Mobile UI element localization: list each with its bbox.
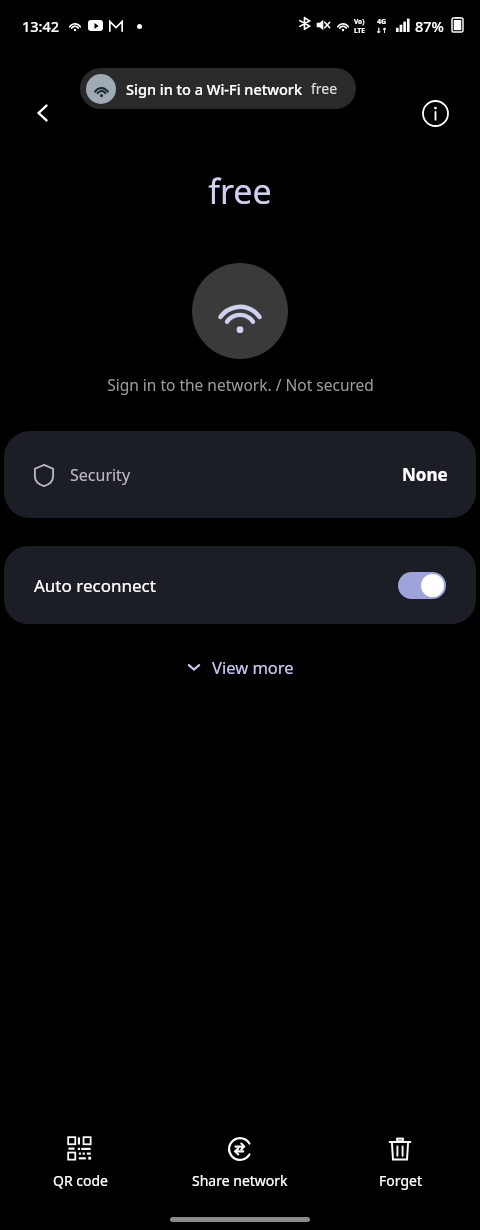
staticText: 87% <box>415 16 444 36</box>
staticText: Sign in to a Wi-Fi network <box>126 79 303 99</box>
staticText: Vo) <box>354 17 365 26</box>
staticText: 13:42 <box>22 16 60 36</box>
staticText: QR code <box>53 1171 108 1190</box>
staticText: ↓↑ <box>376 27 388 35</box>
staticText: None <box>402 463 448 486</box>
staticText: Auto reconnect <box>34 574 156 597</box>
staticText: 4G <box>377 17 387 27</box>
button[interactable]: View more <box>0 648 480 686</box>
button[interactable]: Auto reconnect <box>4 546 476 624</box>
staticText: Security <box>70 464 131 486</box>
staticText: free <box>208 168 272 214</box>
staticText: Sign in to the network. / Not secured <box>107 374 374 395</box>
staticText: free <box>311 79 338 98</box>
button[interactable]: QR code <box>0 1114 160 1214</box>
staticText: Forget <box>379 1171 422 1190</box>
staticText: View more <box>212 656 294 678</box>
staticText: LTE <box>354 26 365 35</box>
button[interactable]: Back <box>20 90 66 136</box>
button[interactable]: Sign in to a Wi-Fi network <box>80 68 356 109</box>
button[interactable]: Security <box>4 431 476 518</box>
staticText: Share network <box>192 1171 288 1190</box>
button[interactable]: Information <box>412 90 458 136</box>
button[interactable]: Forget <box>320 1114 480 1214</box>
button[interactable]: Share network <box>160 1114 320 1214</box>
